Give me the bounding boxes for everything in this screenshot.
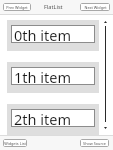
- button[interactable]: 2th item: [7, 104, 99, 135]
- button[interactable]: Show Source: [80, 139, 109, 147]
- staticText: 0th item: [14, 25, 71, 43]
- staticText: 1th item: [14, 67, 71, 85]
- button[interactable]: 0th item: [7, 20, 99, 51]
- staticText: Next Widget: [84, 5, 107, 10]
- button[interactable]: Prev Widget: [3, 3, 31, 11]
- staticText: Show Source: [83, 141, 106, 146]
- staticText: FlatList: [44, 3, 63, 11]
- button[interactable]: Next Widget: [80, 3, 110, 11]
- staticText: Widgets List: [4, 141, 26, 146]
- button[interactable]: 1th item: [7, 62, 99, 93]
- staticText: Prev Widget: [6, 5, 28, 10]
- staticText: 2th item: [14, 109, 71, 127]
- button[interactable]: Widgets List: [3, 139, 27, 147]
